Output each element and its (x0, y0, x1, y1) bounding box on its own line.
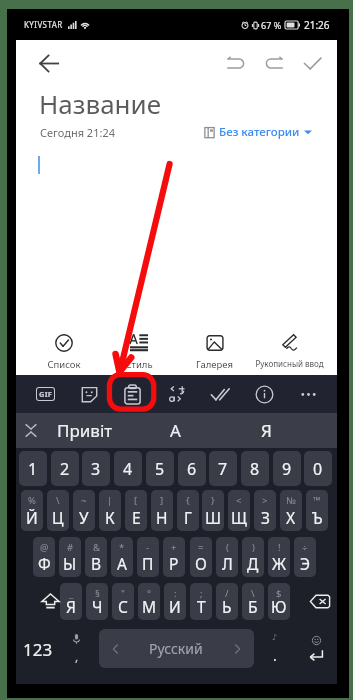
staticText: % (28, 494, 36, 507)
button[interactable]: ~ (73, 490, 95, 531)
staticText: 1 (28, 458, 38, 480)
staticText: ° (147, 587, 152, 600)
button[interactable]: / (216, 583, 238, 620)
staticText: : (174, 587, 177, 600)
button[interactable]: § (86, 583, 108, 620)
button[interactable]: Undo (219, 46, 253, 80)
button[interactable]: Voice input (60, 630, 92, 668)
button[interactable]: [ (125, 490, 147, 531)
button[interactable]: Я (221, 413, 312, 448)
staticText: 0 (313, 458, 323, 480)
button[interactable]: 1 (19, 451, 47, 486)
button[interactable]: Привіт (39, 413, 130, 448)
staticText: Е (132, 507, 141, 528)
button[interactable]: Collapse suggestions (16, 413, 46, 448)
button[interactable]: Рукописный ввод (249, 325, 329, 375)
staticText: Я (261, 419, 272, 442)
staticText: Б (248, 596, 258, 617)
button[interactable]: @ (33, 537, 55, 577)
button[interactable]: = (190, 537, 212, 577)
button[interactable]: ] (151, 490, 173, 531)
button[interactable]: - (137, 537, 159, 577)
button[interactable]: % (21, 490, 43, 531)
button[interactable]: 123 (20, 630, 56, 668)
button[interactable]: № (280, 490, 302, 531)
staticText: { (186, 494, 190, 507)
button[interactable]: 9 (273, 451, 301, 486)
button[interactable]: # (59, 537, 81, 577)
button[interactable]: { (177, 490, 199, 531)
button[interactable]: $ (268, 583, 290, 620)
button[interactable]: \ (242, 583, 264, 620)
button[interactable]: 4 (114, 451, 142, 486)
button[interactable]: ™ (306, 490, 328, 531)
button[interactable]: ( (216, 537, 238, 577)
button[interactable]: > (254, 490, 276, 531)
staticText: Ж (272, 553, 287, 574)
button[interactable]: Redo (257, 46, 291, 80)
button[interactable]: * (111, 537, 133, 577)
button[interactable]: Enter (300, 630, 332, 668)
button[interactable]: | (99, 490, 121, 531)
button[interactable]: А (130, 413, 221, 448)
button[interactable]: ♪ (259, 630, 291, 668)
staticText: [ (134, 494, 138, 507)
staticText: $ (276, 587, 282, 600)
staticText: А (117, 553, 127, 574)
button[interactable]: ; (190, 583, 212, 620)
button[interactable]: 5 (146, 451, 174, 486)
button[interactable]: Backspace (304, 583, 336, 620)
button[interactable]: + (163, 537, 185, 577)
button[interactable]: 7 (209, 451, 237, 486)
button[interactable]: ! (268, 537, 290, 577)
button[interactable]: " (112, 583, 134, 620)
button[interactable]: 2 (51, 451, 79, 486)
staticText: ™ (313, 494, 321, 507)
button[interactable]: ÷ (294, 537, 316, 577)
button[interactable]: Translate (159, 375, 193, 413)
staticText: } (211, 494, 215, 507)
button[interactable]: GIF (28, 375, 62, 413)
staticText: Сегодня 21:24 (40, 125, 115, 140)
button[interactable]: \ (47, 490, 69, 531)
button[interactable]: _ (60, 583, 82, 620)
button[interactable]: More options (291, 375, 325, 413)
button[interactable]: 3 (82, 451, 110, 486)
staticText: KYIVSTAR (24, 19, 63, 30)
button[interactable]: 0 (304, 451, 332, 486)
staticText: Стиль (125, 358, 153, 371)
button[interactable]: < (228, 490, 250, 531)
button[interactable]: ) (242, 537, 264, 577)
button[interactable]: & (85, 537, 107, 577)
button[interactable]: Список (24, 325, 104, 375)
staticText: \ (251, 587, 255, 600)
button[interactable]: Spell check (203, 375, 237, 413)
staticText: 6 (187, 458, 197, 480)
staticText: " (121, 587, 125, 600)
button[interactable]: 8 (241, 451, 269, 486)
staticText: Название (39, 86, 162, 121)
staticText: ! (278, 541, 281, 554)
button[interactable]: Clipboard (115, 375, 149, 413)
button[interactable]: Back (30, 45, 66, 81)
button[interactable]: Русский (99, 629, 254, 668)
button[interactable]: Стиль (99, 325, 179, 375)
staticText: Г (184, 507, 192, 528)
button[interactable]: Save (295, 46, 329, 80)
button[interactable]: Stickers (72, 375, 106, 413)
button[interactable]: ° (138, 583, 160, 620)
button[interactable]: } (202, 490, 224, 531)
button[interactable]: Shift (34, 583, 66, 620)
button[interactable]: 6 (178, 451, 206, 486)
staticText: GIF (39, 389, 53, 399)
staticText: 7 (218, 458, 228, 480)
button[interactable]: Галерея (174, 325, 254, 375)
staticText: Ч (92, 596, 103, 617)
staticText: С (118, 596, 128, 617)
button[interactable]: : (164, 583, 186, 620)
button[interactable]: Settings info (247, 375, 281, 413)
staticText: _ (69, 587, 74, 600)
staticText: ] (160, 494, 164, 507)
staticText: 5 (155, 458, 165, 480)
button[interactable]: Без категории (204, 124, 312, 140)
